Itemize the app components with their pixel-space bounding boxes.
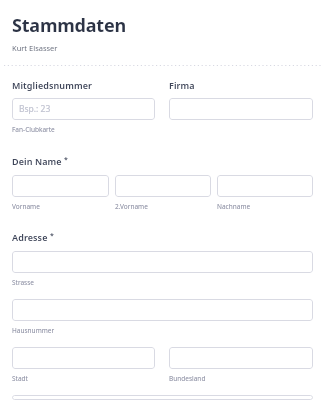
staticText: Strasse <box>12 278 35 287</box>
staticText: Nachname <box>217 202 251 211</box>
button[interactable]: Vorname <box>12 175 109 197</box>
staticText: Stadt <box>12 374 28 383</box>
button[interactable]: Hausnummer <box>12 299 313 321</box>
staticText: 2.Vorname <box>115 202 148 211</box>
button[interactable]: Mitgliedsnummer <box>12 98 155 120</box>
staticText: Firma <box>169 79 195 91</box>
button[interactable]: 2.Vorname <box>115 175 211 197</box>
staticText: Bsp.: 23 <box>19 103 51 115</box>
button[interactable]: Stadt <box>12 347 155 369</box>
staticText: Stammdaten <box>12 13 127 38</box>
button[interactable]: Nachname <box>217 175 313 197</box>
staticText: Vorname <box>12 202 40 211</box>
staticText: * <box>48 231 54 241</box>
button[interactable]: Strasse <box>12 251 313 273</box>
staticText: Mitgliedsnummer <box>12 79 93 91</box>
staticText: Kurt Elsasser <box>12 43 58 53</box>
button[interactable]: Firma <box>169 98 313 120</box>
staticText: Hausnummer <box>12 326 55 335</box>
staticText: Adresse <box>12 231 48 243</box>
button[interactable]: Postleitzahl <box>12 395 313 400</box>
staticText: * <box>62 155 68 165</box>
staticText: Dein Name <box>12 155 62 167</box>
staticText: Fan-Clubkarte <box>12 125 55 134</box>
staticText: Bundesland <box>169 374 206 383</box>
button[interactable]: Bundesland <box>169 347 313 369</box>
